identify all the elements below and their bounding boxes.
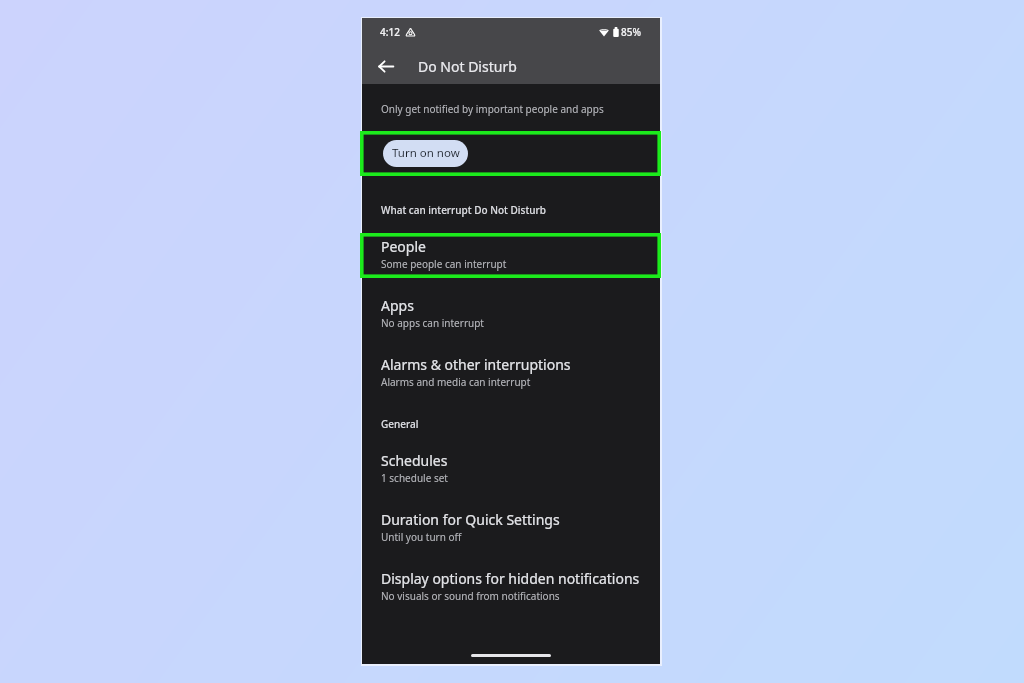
staticText: 1 schedule set <box>381 471 448 485</box>
staticText: 85% <box>621 25 641 39</box>
button[interactable]: Turn on now <box>383 140 468 167</box>
button[interactable]: Back <box>366 46 406 86</box>
staticText: People <box>381 237 426 256</box>
staticText: Duration for Quick Settings <box>381 510 560 529</box>
staticText: Schedules <box>381 451 448 470</box>
staticText: Alarms & other interruptions <box>381 355 571 374</box>
staticText: Alarms and media can interrupt <box>381 375 531 389</box>
staticText: No apps can interrupt <box>381 316 484 330</box>
staticText: Display options for hidden notifications <box>381 569 640 588</box>
button[interactable]: Apps <box>362 288 660 336</box>
staticText: Only get notified by important people an… <box>381 102 604 116</box>
staticText: No visuals or sound from notifications <box>381 589 560 603</box>
button[interactable]: Alarms & other interruptions <box>362 347 660 395</box>
staticText: Apps <box>381 296 414 315</box>
staticText: General <box>381 417 419 431</box>
staticText: Turn on now <box>392 145 460 161</box>
button[interactable]: Display options for hidden notifications <box>362 561 660 609</box>
staticText: Until you turn off <box>381 530 462 544</box>
staticText: 4:12 <box>380 25 400 39</box>
staticText: Some people can interrupt <box>381 257 507 271</box>
button[interactable]: Schedules <box>362 443 660 491</box>
button[interactable]: Duration for Quick Settings <box>362 502 660 550</box>
button[interactable]: People <box>362 229 660 277</box>
staticText: What can interrupt Do Not Disturb <box>381 203 546 217</box>
staticText: Do Not Disturb <box>418 57 517 76</box>
